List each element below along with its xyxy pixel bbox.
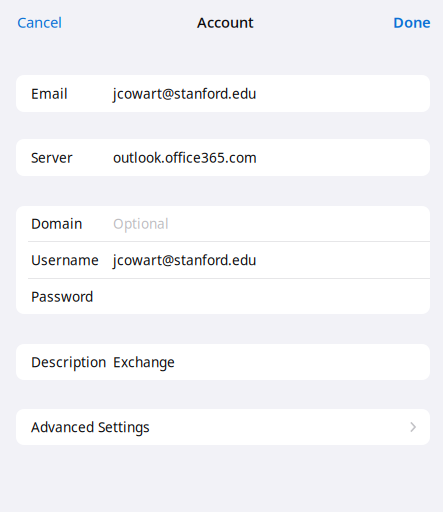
staticText: Advanced Settings: [31, 418, 150, 436]
button[interactable]: Description: [16, 344, 430, 380]
button[interactable]: Domain: [16, 206, 430, 241]
button[interactable]: Email: [16, 75, 430, 112]
staticText: Done: [393, 12, 431, 32]
staticText: jcowart@stanford.edu: [113, 84, 256, 103]
button[interactable]: Advanced Settings: [0, 409, 443, 445]
staticText: Account: [197, 12, 254, 32]
staticText: Domain: [31, 214, 82, 233]
button[interactable]: Done: [381, 0, 443, 44]
button[interactable]: Cancel: [0, 0, 79, 44]
staticText: Description: [31, 353, 106, 371]
staticText: outlook.office365.com: [113, 148, 257, 167]
button[interactable]: Username: [16, 242, 430, 278]
staticText: Optional: [113, 214, 169, 233]
button[interactable]: Password: [16, 279, 430, 314]
staticText: jcowart@stanford.edu: [113, 251, 256, 269]
staticText: Password: [31, 287, 93, 306]
button[interactable]: Server: [16, 139, 430, 176]
staticText: Username: [31, 251, 99, 269]
staticText: Email: [31, 84, 68, 103]
staticText: Cancel: [17, 12, 62, 32]
staticText: Server: [31, 148, 73, 167]
staticText: Exchange: [113, 353, 175, 371]
